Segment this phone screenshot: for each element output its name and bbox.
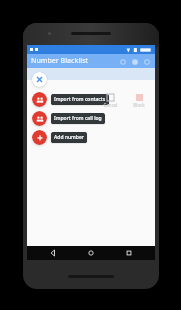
staticText: Import from contacts bbox=[54, 96, 106, 103]
staticText: Cancel bbox=[103, 102, 118, 108]
button[interactable]: Add number bbox=[32, 130, 87, 145]
button[interactable]: Cancel bbox=[100, 94, 120, 108]
button[interactable]: Recents bbox=[117, 246, 141, 260]
button[interactable]: Info bbox=[130, 57, 139, 66]
staticText: Add number bbox=[54, 134, 84, 141]
staticText: Import from call log bbox=[54, 115, 102, 122]
button[interactable]: Close menu bbox=[32, 72, 47, 87]
staticText: Block bbox=[133, 102, 145, 108]
button[interactable]: Import from call log bbox=[32, 111, 105, 126]
button[interactable]: Home bbox=[79, 246, 103, 260]
button[interactable]: Back bbox=[41, 246, 65, 260]
button[interactable]: Refresh bbox=[118, 57, 127, 66]
button[interactable]: Import from contacts bbox=[32, 92, 109, 107]
button[interactable]: More options bbox=[142, 57, 151, 66]
button[interactable]: Block bbox=[129, 94, 149, 108]
staticText: Number Blacklist bbox=[31, 56, 89, 66]
